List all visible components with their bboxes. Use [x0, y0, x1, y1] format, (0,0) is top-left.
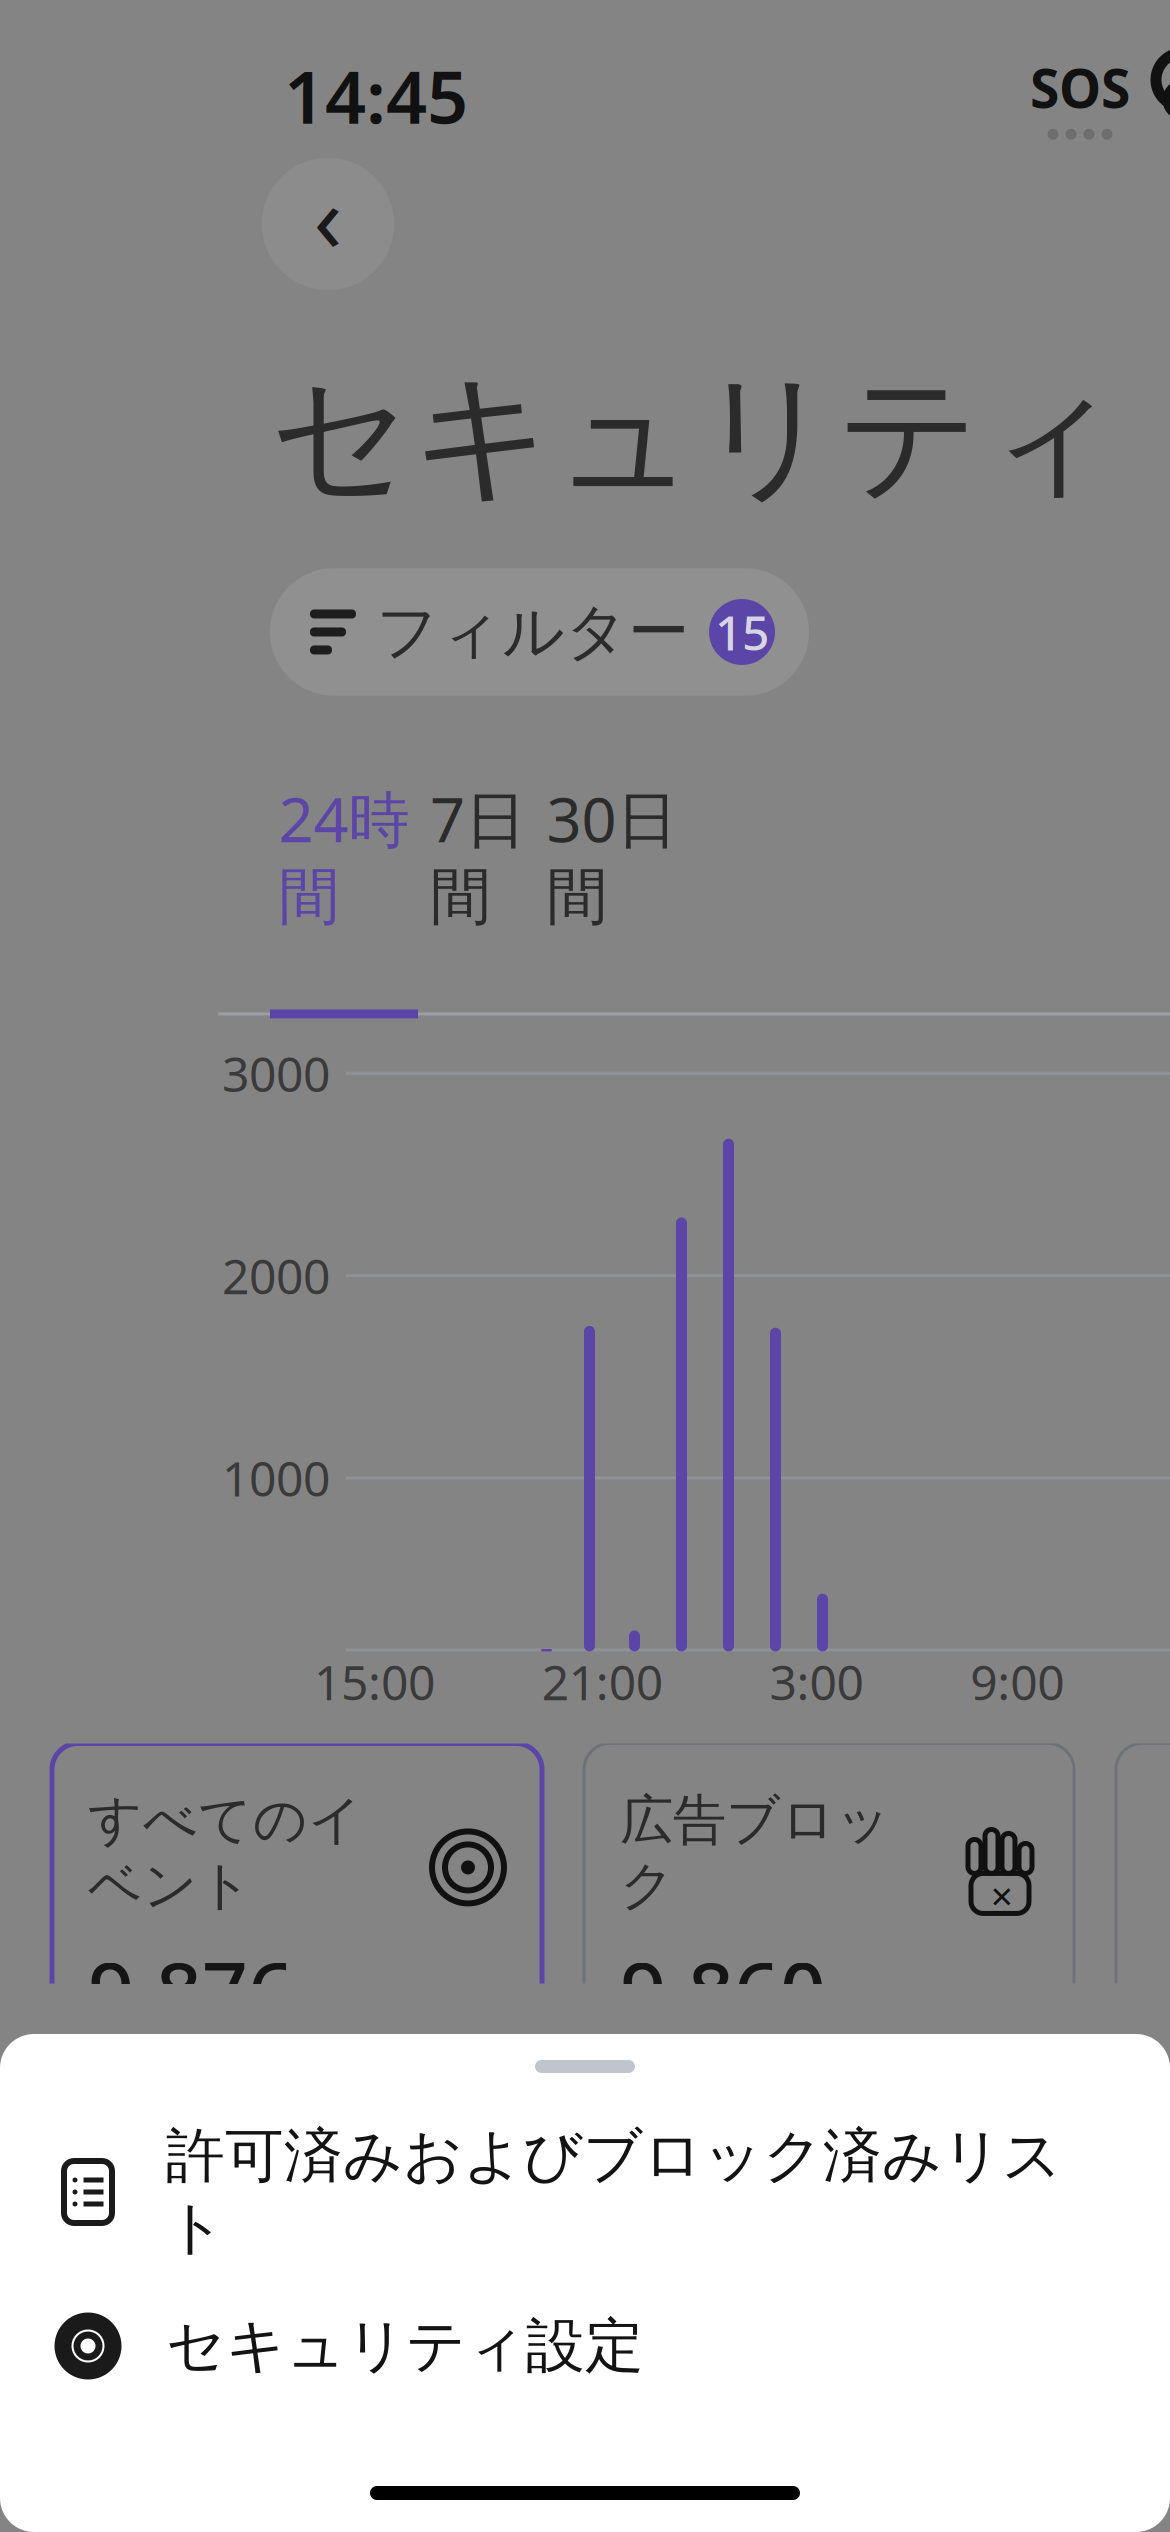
button[interactable]: セキュリティ設定: [0, 2291, 1170, 2401]
staticText: すべてのイベント: [88, 1787, 363, 1918]
button[interactable]: 24時間: [270, 762, 418, 1012]
staticText: フィルター: [376, 594, 689, 670]
button[interactable]: フィルター: [270, 568, 809, 696]
button[interactable]: 30日間: [538, 762, 686, 1012]
staticText: 9:00: [970, 1650, 1064, 1713]
staticText: 1000: [222, 1446, 330, 1510]
staticText: 21:00: [542, 1650, 663, 1713]
staticText: 広告ブロック: [620, 1787, 891, 1918]
staticText: 15:00: [314, 1650, 435, 1713]
staticText: 7日間: [430, 778, 526, 934]
staticText: 9,860: [620, 1936, 826, 2043]
button[interactable]: 許可済みおよびブロック済みリスト: [0, 2137, 1170, 2247]
button[interactable]: 広告ブロック: [584, 1743, 1074, 2063]
staticText: 14:45: [284, 48, 468, 144]
staticText: ‹: [313, 154, 342, 278]
staticText: 3:00: [769, 1650, 863, 1713]
staticText: 24時間: [278, 778, 409, 934]
staticText: 許可済みおよびブロック済みリスト: [166, 2120, 1062, 2264]
staticText: セキュリティ設定: [166, 2310, 644, 2382]
button[interactable]: 戻る: [262, 158, 394, 290]
staticText: SOS: [1030, 52, 1130, 123]
button[interactable]: [1116, 1743, 1170, 2063]
staticText: セキュリティ: [270, 352, 1122, 522]
staticText: 30日間: [546, 778, 677, 934]
staticText: ✕: [989, 1881, 1014, 1914]
staticText: 15: [715, 600, 769, 664]
staticText: 3000: [222, 1041, 330, 1105]
staticText: 2000: [222, 1244, 330, 1307]
staticText: 9,876: [88, 1936, 294, 2043]
button[interactable]: 7日間: [418, 762, 538, 1012]
button[interactable]: すべてのイベント: [52, 1743, 542, 2063]
